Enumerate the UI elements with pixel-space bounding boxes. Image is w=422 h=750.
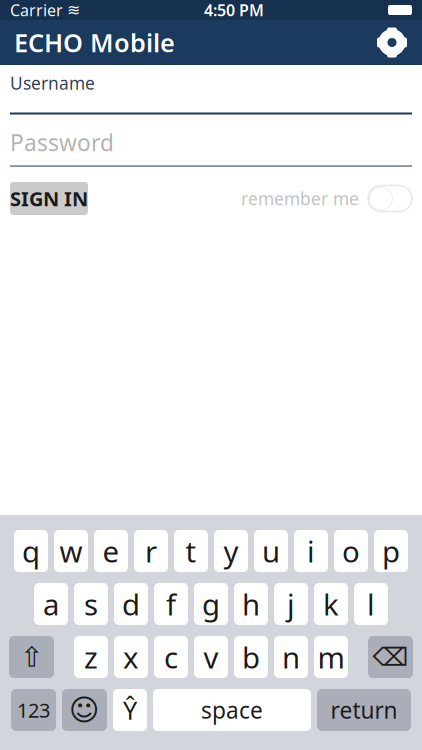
staticText: b — [242, 637, 260, 676]
button[interactable]: d — [114, 583, 148, 625]
button[interactable]: e — [94, 530, 128, 572]
staticText: j — [287, 584, 295, 623]
button[interactable]: i — [294, 530, 328, 572]
staticText: ⌫ — [372, 643, 408, 671]
staticText: k — [323, 584, 339, 623]
button[interactable]: m — [314, 636, 348, 678]
staticText: v — [203, 637, 218, 676]
button[interactable]: Settings — [370, 20, 414, 64]
button[interactable]: Username — [10, 73, 412, 113]
button[interactable]: q — [14, 530, 48, 572]
staticText: q — [22, 531, 40, 570]
staticText: Carrier — [10, 0, 63, 21]
button[interactable]: Password — [10, 130, 412, 164]
staticText: u — [262, 531, 280, 570]
button[interactable]: 123 — [11, 689, 56, 731]
staticText: l — [367, 584, 375, 623]
staticText: o — [342, 531, 360, 570]
staticText: ECHO Mobile — [14, 26, 175, 59]
staticText: ≋ — [67, 1, 80, 19]
button[interactable]: n — [274, 636, 308, 678]
staticText: n — [282, 637, 300, 676]
staticText: e — [102, 531, 119, 570]
staticText: a — [43, 584, 59, 623]
staticText: Password — [10, 127, 114, 157]
staticText: p — [382, 531, 400, 570]
staticText: Username — [10, 71, 95, 94]
button[interactable]: remember me — [241, 185, 412, 211]
staticText: r — [145, 531, 157, 570]
staticText: g — [202, 584, 220, 623]
staticText: s — [84, 584, 98, 623]
button[interactable]: f — [154, 583, 188, 625]
staticText: x — [123, 637, 139, 676]
button[interactable]: b — [234, 636, 268, 678]
button[interactable]: w — [54, 530, 88, 572]
staticText: h — [242, 584, 260, 623]
button[interactable]: k — [314, 583, 348, 625]
staticText: ☺ — [69, 693, 100, 727]
button[interactable]: t — [174, 530, 208, 572]
button[interactable]: g — [194, 583, 228, 625]
button[interactable]: Shift — [9, 636, 54, 678]
staticText: 4:50 PM — [204, 0, 264, 21]
button[interactable]: r — [134, 530, 168, 572]
button[interactable]: l — [354, 583, 388, 625]
button[interactable]: s — [74, 583, 108, 625]
staticText: ⇧ — [20, 641, 43, 673]
staticText: z — [84, 637, 98, 676]
button[interactable]: p — [374, 530, 408, 572]
staticText: space — [201, 695, 263, 725]
staticText: t — [185, 531, 196, 570]
button[interactable]: h — [234, 583, 268, 625]
button[interactable]: Delete — [368, 636, 413, 678]
button[interactable]: v — [194, 636, 228, 678]
button[interactable]: o — [334, 530, 368, 572]
button[interactable]: u — [254, 530, 288, 572]
staticText: y — [223, 531, 238, 570]
staticText: c — [164, 637, 178, 676]
staticText: SIGN IN — [10, 185, 88, 212]
staticText: w — [59, 531, 82, 570]
button[interactable]: j — [274, 583, 308, 625]
button[interactable]: SIGN IN — [10, 182, 88, 215]
button[interactable]: space — [153, 689, 311, 731]
button[interactable]: Emoji — [62, 689, 107, 731]
staticText: remember me — [241, 187, 359, 210]
staticText: i — [307, 531, 315, 570]
staticText: 123 — [17, 697, 50, 723]
button[interactable]: z — [74, 636, 108, 678]
staticText: d — [122, 584, 140, 623]
staticText: f — [166, 584, 176, 623]
button[interactable]: a — [34, 583, 68, 625]
button[interactable]: c — [154, 636, 188, 678]
button[interactable]: x — [114, 636, 148, 678]
staticText: m — [317, 637, 344, 676]
button[interactable]: return — [317, 689, 411, 731]
button[interactable]: Dictation — [113, 689, 147, 731]
staticText: return — [330, 695, 397, 725]
staticText: Ŷ — [123, 693, 137, 727]
button[interactable]: y — [214, 530, 248, 572]
